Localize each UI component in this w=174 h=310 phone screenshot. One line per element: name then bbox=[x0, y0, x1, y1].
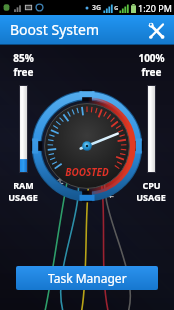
staticText: USAGE bbox=[8, 191, 38, 203]
staticText: 85% bbox=[13, 51, 34, 65]
staticText: 100% bbox=[138, 51, 165, 65]
staticText: BOOSTED bbox=[65, 165, 109, 179]
button[interactable]: Boost gauge, boosted bbox=[30, 89, 144, 203]
staticText: USAGE bbox=[136, 191, 166, 203]
staticText: free bbox=[141, 65, 162, 79]
button[interactable]: 100% bbox=[131, 51, 171, 203]
staticText: G bbox=[114, 4, 119, 12]
button[interactable]: Task Manager bbox=[16, 266, 158, 290]
staticText: 1:20 PM bbox=[138, 2, 172, 14]
button[interactable]: 85% bbox=[3, 51, 43, 203]
button[interactable]: Settings tools bbox=[144, 18, 168, 42]
staticText: Task Manager bbox=[48, 270, 127, 286]
staticText: free bbox=[13, 65, 34, 79]
staticText: Boost System bbox=[10, 20, 100, 39]
staticText: CPU bbox=[142, 179, 161, 191]
staticText: 3G bbox=[92, 3, 102, 13]
staticText: RAM bbox=[13, 179, 34, 191]
